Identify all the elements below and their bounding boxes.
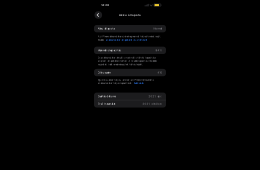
button[interactable]: Akku állapota (94, 25, 166, 32)
staticText: Akku állapota (98, 27, 115, 30)
staticText: Akku állapota (119, 13, 141, 17)
staticText: Gyártás dátuma (98, 95, 116, 98)
staticText: az akkumulátor állapotáról és a töltésrő… (106, 38, 148, 41)
button[interactable]: Back (94, 11, 103, 19)
staticText: 2021. ápr. (148, 95, 162, 98)
staticText: Egy ciklus akkor teljes, amikor az iPhon… (98, 78, 154, 81)
staticText: Az iPhone akkumulátora jelenleg normál t… (98, 35, 162, 38)
button[interactable]: Maximális kapacitás (94, 47, 166, 54)
staticText: 14:28 (101, 3, 109, 7)
staticText: az akkumulátor teljes kapacitását. (98, 82, 134, 85)
staticText: 2021. október (142, 102, 162, 105)
staticText: Normál (153, 27, 162, 30)
staticText: Első használat (98, 102, 116, 105)
staticText: Ez az akkumulátor aktuális maximális töl… (98, 56, 156, 59)
staticText: 84% (155, 49, 162, 52)
staticText: Ciklusszám (98, 71, 111, 74)
button[interactable]: Ciklusszám (94, 69, 166, 76)
staticText: Tovább: (98, 38, 106, 41)
staticText: Tudnivalók (134, 82, 144, 85)
staticText: használati időt eredményez két töltés kö… (98, 63, 144, 66)
staticText: 410 (157, 71, 162, 74)
staticText: az újkori állapotához mérten. A kisebb k… (98, 59, 157, 62)
staticText: Maximális kapacitás (98, 49, 121, 52)
